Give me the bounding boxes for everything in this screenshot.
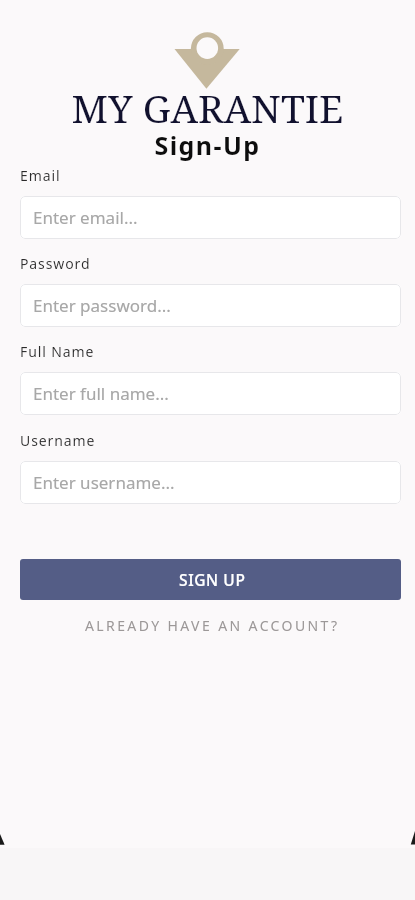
other: My Garantie logo [172, 30, 242, 92]
button[interactable]: Enter password... [20, 284, 401, 327]
button[interactable]: Enter full name... [20, 372, 401, 415]
staticText: Enter password... [33, 294, 171, 317]
staticText: ALREADY HAVE AN ACCOUNT? [85, 616, 340, 635]
staticText: MY GARANTIE [0, 81, 415, 134]
button[interactable]: Enter username... [20, 461, 401, 504]
staticText: Sign-Up [0, 128, 415, 162]
button[interactable]: ALREADY HAVE AN ACCOUNT? [20, 612, 401, 638]
staticText: Email [20, 166, 61, 185]
staticText: Username [20, 431, 96, 450]
staticText: Password [20, 254, 91, 273]
staticText: Full Name [20, 342, 95, 361]
staticText: Enter email... [33, 206, 138, 229]
staticText: Enter username... [33, 471, 175, 494]
staticText: Enter full name... [33, 382, 169, 405]
button[interactable]: Enter email... [20, 196, 401, 239]
staticText: SIGN UP [179, 569, 246, 590]
button[interactable]: SIGN UP [20, 559, 401, 600]
